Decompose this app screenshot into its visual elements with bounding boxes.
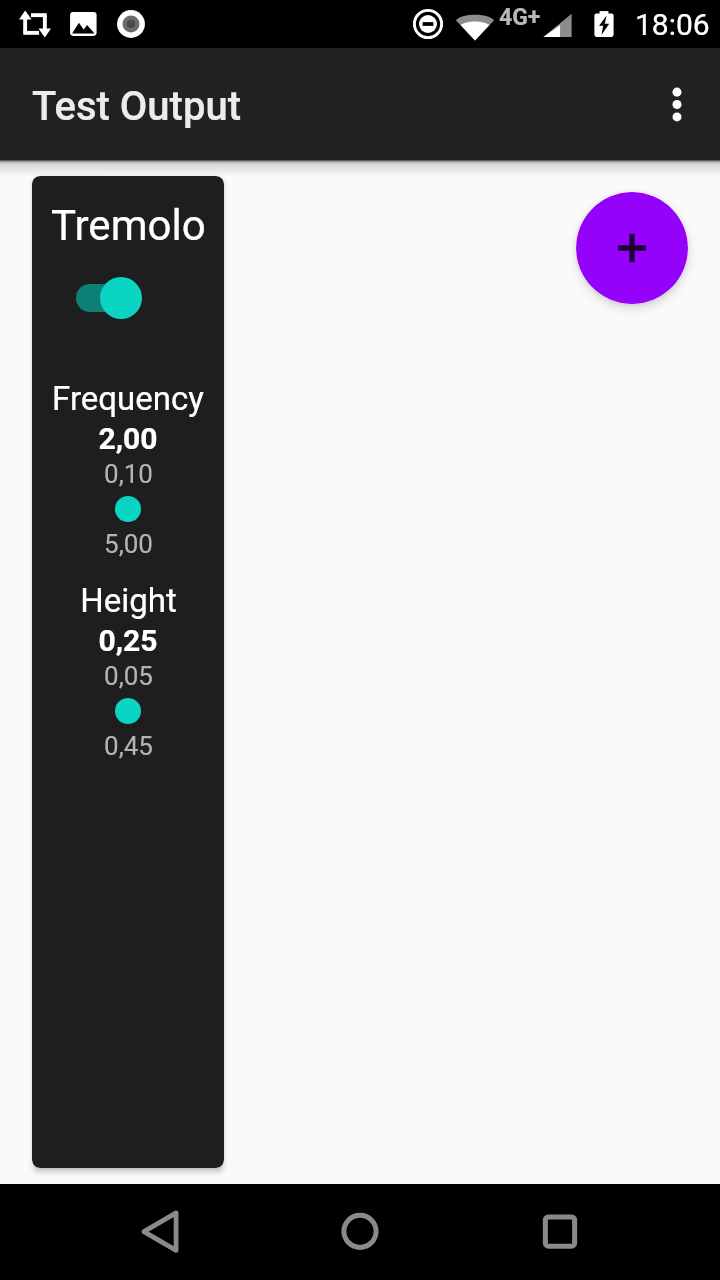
button[interactable]: More options (637, 65, 717, 145)
staticText: 0,10 (104, 459, 153, 489)
button[interactable]: Recents (512, 1184, 608, 1280)
button[interactable]: Back (112, 1184, 208, 1280)
button[interactable]: Add (576, 192, 688, 304)
staticText: 0,45 (104, 731, 153, 761)
staticText: 0,05 (104, 661, 153, 691)
button[interactable]: Frequency slider (80, 485, 176, 533)
button[interactable]: Home (312, 1184, 408, 1280)
staticText: Height (80, 581, 177, 620)
staticText: Frequency (52, 379, 204, 418)
staticText: 0,25 (98, 623, 158, 658)
button[interactable]: Enable Tremolo (76, 277, 142, 319)
staticText: 4G+ (499, 4, 541, 31)
staticText: 5,00 (104, 529, 153, 559)
staticText: 2,00 (98, 421, 158, 456)
button[interactable]: Height slider (80, 687, 176, 735)
staticText: Test Output (32, 83, 241, 130)
staticText: 18:06 (635, 7, 710, 42)
staticText: Tremolo (51, 201, 206, 250)
